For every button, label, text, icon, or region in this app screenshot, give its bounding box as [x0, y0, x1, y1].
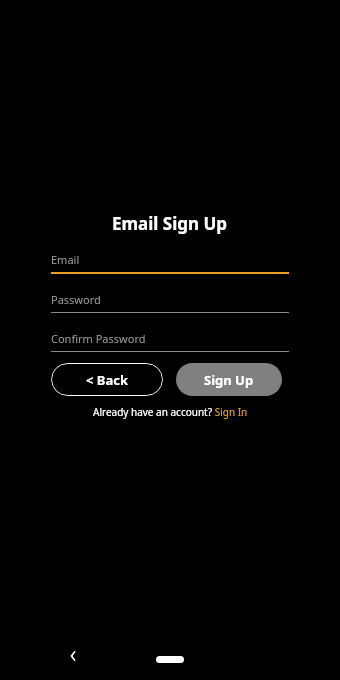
button[interactable]: Confirm Password [51, 331, 289, 352]
button[interactable]: Back [58, 641, 88, 671]
staticText: Email Sign Up [112, 212, 228, 235]
staticText: Email [51, 252, 80, 267]
button[interactable]: Home [156, 656, 184, 663]
staticText: < Back [86, 371, 129, 389]
button[interactable]: < Back [51, 363, 163, 396]
staticText: Confirm Password [51, 331, 146, 346]
button[interactable]: Email [51, 252, 289, 274]
staticText: Already have an account? Sign In [93, 405, 248, 419]
button[interactable]: Sign Up [176, 363, 282, 396]
staticText: Password [51, 292, 101, 307]
staticText: Sign Up [204, 371, 254, 389]
button[interactable]: Password [51, 292, 289, 313]
button[interactable]: Already have an account? Sign In [93, 405, 248, 419]
